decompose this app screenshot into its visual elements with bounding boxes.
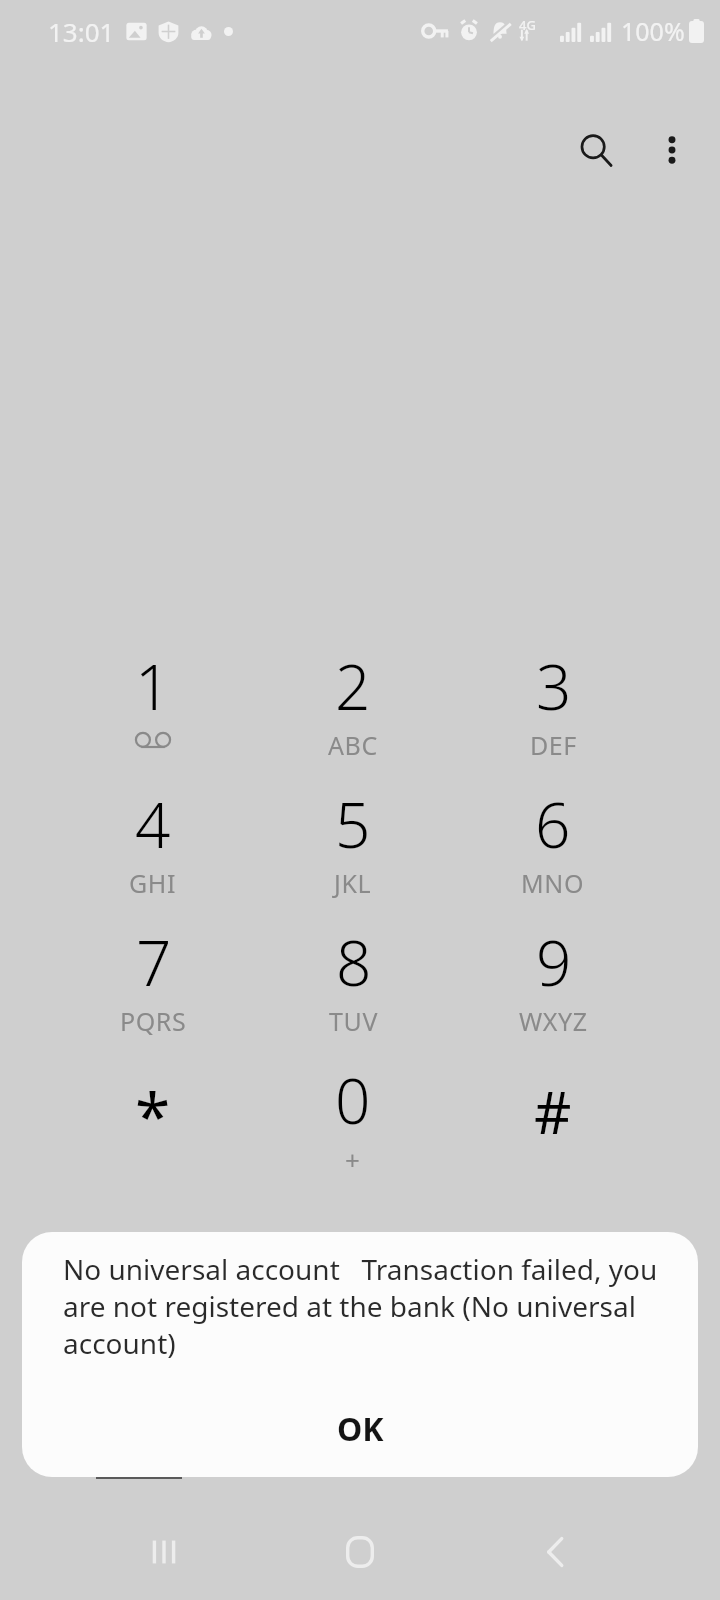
staticText: 7	[136, 920, 172, 1004]
staticText: 0	[335, 1058, 371, 1142]
staticText: 3	[536, 644, 572, 728]
button[interactable]: *	[53, 1050, 253, 1188]
staticText: *	[135, 1072, 171, 1159]
button[interactable]: 6	[453, 774, 653, 912]
button[interactable]: Back	[508, 1504, 604, 1600]
button[interactable]: 0	[253, 1050, 453, 1188]
button[interactable]: 7	[53, 912, 253, 1050]
staticText: 1	[135, 644, 171, 728]
button[interactable]: 4	[53, 774, 253, 912]
staticText: 2	[335, 644, 371, 728]
button[interactable]: 9	[453, 912, 653, 1050]
staticText: GHI	[129, 866, 177, 900]
staticText: #	[534, 1072, 572, 1151]
staticText: 6	[535, 782, 571, 866]
staticText: No universal account Transaction failed,…	[63, 1250, 670, 1362]
staticText: JKL	[334, 866, 372, 900]
staticText: 13:01	[48, 14, 115, 49]
staticText: WXYZ	[519, 1004, 588, 1038]
staticText: DEF	[530, 728, 577, 762]
staticText: 4	[135, 782, 171, 866]
button[interactable]: Home	[312, 1504, 408, 1600]
button[interactable]: 2	[253, 636, 453, 774]
button[interactable]: 8	[253, 912, 453, 1050]
button[interactable]: #	[453, 1050, 653, 1188]
button[interactable]: OK	[22, 1386, 698, 1472]
staticText: +	[345, 1142, 361, 1177]
staticText: OK	[337, 1407, 384, 1451]
button[interactable]: 3	[453, 636, 653, 774]
staticText: 100%	[621, 14, 685, 48]
staticText: 4G	[519, 16, 536, 34]
button[interactable]: Search	[558, 112, 634, 188]
button[interactable]: Recent apps	[116, 1504, 212, 1600]
button[interactable]: 5	[253, 774, 453, 912]
button[interactable]: 1	[53, 636, 253, 774]
staticText: PQRS	[120, 1004, 187, 1038]
staticText: 8	[336, 920, 372, 1004]
staticText: TUV	[329, 1004, 378, 1038]
staticText: 9	[536, 920, 572, 1004]
staticText: ABC	[328, 728, 378, 762]
staticText: 5	[335, 782, 371, 866]
staticText: MNO	[521, 866, 585, 900]
button[interactable]: More options	[634, 112, 710, 188]
